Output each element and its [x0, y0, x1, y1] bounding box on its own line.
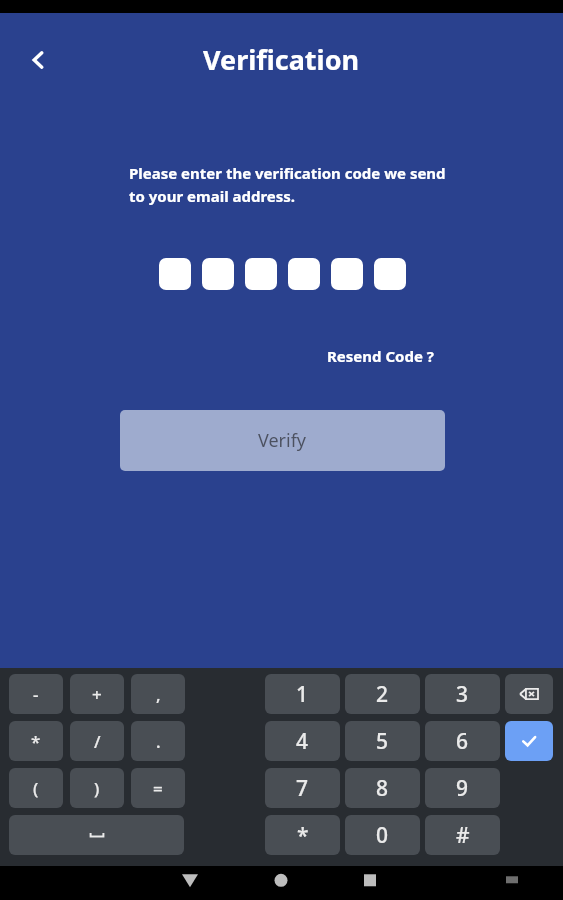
staticText: * — [297, 821, 309, 850]
staticText: 4 — [296, 727, 309, 756]
button[interactable]: 4 — [265, 721, 340, 761]
button[interactable]: / — [70, 721, 124, 761]
staticText: Verification — [203, 41, 360, 78]
button[interactable]: , — [131, 674, 185, 714]
button[interactable]: Recents — [349, 866, 393, 900]
staticText: 1 — [296, 680, 309, 709]
staticText: - — [33, 683, 39, 706]
button[interactable]: Code digit 2 — [202, 258, 234, 290]
staticText: 2 — [376, 680, 389, 709]
staticText: Please enter the verification code we se… — [129, 163, 446, 206]
button[interactable]: 8 — [345, 768, 420, 808]
staticText: = — [153, 777, 163, 800]
staticText: 9 — [456, 774, 469, 803]
button[interactable]: Resend Code ? — [327, 346, 434, 366]
button[interactable]: 7 — [265, 768, 340, 808]
button[interactable]: Code digit 4 — [288, 258, 320, 290]
staticText: + — [92, 683, 102, 706]
button[interactable]: Home — [259, 866, 303, 900]
button[interactable]: . — [131, 721, 185, 761]
staticText: ( — [33, 777, 39, 800]
staticText: * — [31, 730, 41, 753]
staticText: 6 — [456, 727, 469, 756]
button[interactable]: Space — [9, 815, 184, 855]
button[interactable]: - — [9, 674, 63, 714]
button[interactable]: Confirm — [505, 721, 553, 761]
staticText: Verify — [258, 428, 307, 453]
staticText: 3 — [456, 680, 469, 709]
button[interactable]: 2 — [345, 674, 420, 714]
staticText: ) — [94, 777, 100, 800]
button[interactable]: 0 — [345, 815, 420, 855]
button[interactable]: = — [131, 768, 185, 808]
staticText: Resend Code ? — [327, 346, 434, 366]
button[interactable]: 5 — [345, 721, 420, 761]
staticText: . — [156, 730, 161, 753]
staticText: 8 — [376, 774, 389, 803]
button[interactable]: Backspace — [505, 674, 553, 714]
staticText: 0 — [376, 821, 389, 850]
staticText: 5 — [376, 727, 389, 756]
button[interactable]: Back — [168, 866, 212, 900]
button[interactable]: ) — [70, 768, 124, 808]
button[interactable]: Verify — [120, 410, 445, 471]
button[interactable]: Code digit 6 — [374, 258, 406, 290]
button[interactable]: 9 — [425, 768, 500, 808]
button[interactable]: Code digit 5 — [331, 258, 363, 290]
staticText: 7 — [296, 774, 309, 803]
button[interactable]: 3 — [425, 674, 500, 714]
button[interactable]: Code digit 3 — [245, 258, 277, 290]
staticText: , — [156, 683, 161, 706]
button[interactable]: * — [9, 721, 63, 761]
staticText: # — [456, 821, 470, 850]
button[interactable]: Code digit 1 — [159, 258, 191, 290]
button[interactable]: * — [265, 815, 340, 855]
button[interactable]: # — [425, 815, 500, 855]
button[interactable]: 1 — [265, 674, 340, 714]
staticText: / — [94, 730, 101, 753]
button[interactable]: + — [70, 674, 124, 714]
button[interactable]: 6 — [425, 721, 500, 761]
button[interactable]: Back — [13, 35, 63, 85]
button[interactable]: ( — [9, 768, 63, 808]
